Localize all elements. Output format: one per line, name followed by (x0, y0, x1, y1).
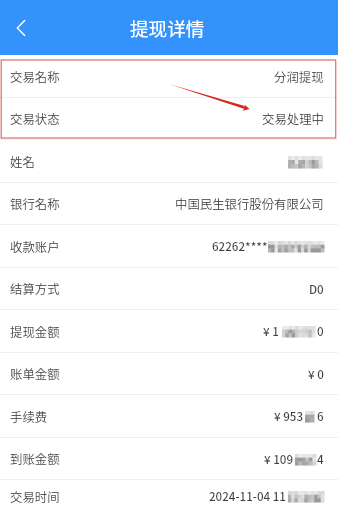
staticText: 0 (317, 323, 324, 340)
button[interactable]: 交易状态 (0, 98, 338, 140)
staticText: ¥ 953 (274, 408, 304, 425)
staticText: ¥ 1 (263, 323, 279, 340)
button[interactable]: 收款账户 (0, 225, 338, 268)
staticText: 提现金额 (10, 323, 60, 341)
staticText: 到账金额 (10, 450, 60, 468)
staticText: 交易名称 (10, 68, 60, 86)
button[interactable]: 账单金额 (0, 353, 338, 395)
staticText: 4 (317, 451, 324, 468)
button[interactable]: 姓名 (0, 140, 338, 183)
button[interactable]: Back (1, 8, 41, 48)
staticText: 提现详情 (130, 14, 205, 41)
button[interactable]: 交易名称 (0, 55, 338, 98)
staticText: 2024-11-04 11 (209, 488, 286, 505)
staticText: 6 (317, 408, 324, 425)
button[interactable]: 结算方式 (0, 268, 338, 310)
staticText: 收款账户 (10, 238, 60, 256)
staticText: D0 (309, 281, 324, 298)
staticText: 姓名 (10, 153, 35, 171)
staticText: 银行名称 (10, 195, 60, 213)
button[interactable]: 提现金额 (0, 310, 338, 353)
staticText: 62262**** (212, 238, 268, 255)
button[interactable]: 银行名称 (0, 183, 338, 225)
staticText: 交易时间 (10, 488, 60, 506)
staticText: 交易状态 (10, 110, 60, 128)
staticText: 账单金额 (10, 365, 60, 383)
staticText: 中国民生银行股份有限公司 (175, 195, 324, 213)
staticText: 交易处理中 (262, 110, 324, 128)
button[interactable]: 手续费 (0, 395, 338, 438)
button[interactable]: 交易时间 (0, 480, 338, 513)
staticText: ¥ 109 (264, 451, 294, 468)
staticText: ¥ 0 (308, 366, 324, 383)
staticText: 手续费 (10, 408, 48, 426)
staticText: 分润提现 (274, 68, 324, 86)
staticText: 结算方式 (10, 280, 60, 298)
button[interactable]: 到账金额 (0, 438, 338, 480)
